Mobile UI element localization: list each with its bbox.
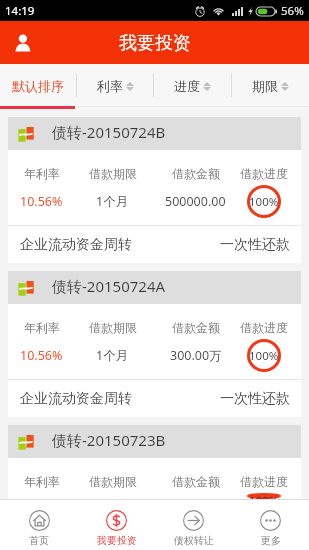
staticText: 借款进度: [240, 320, 288, 335]
staticText: 借款期限: [89, 166, 137, 181]
staticText: 我要投资: [119, 32, 191, 55]
staticText: 企业流动资金周转: [20, 236, 132, 254]
staticText: 一次性还款: [220, 390, 290, 408]
button[interactable]: 期限: [232, 64, 309, 107]
staticText: 债转-20150723B: [52, 430, 166, 450]
staticText: 债转-20150724A: [52, 276, 166, 296]
staticText: 1个月: [96, 347, 129, 364]
staticText: 借款金额: [172, 166, 220, 181]
staticText: 债权转让: [174, 534, 214, 547]
button[interactable]: 债权转让: [155, 500, 232, 550]
button[interactable]: 更多: [232, 500, 309, 550]
staticText: 企业流动资金周转: [20, 390, 132, 408]
staticText: 10.56%: [20, 347, 63, 364]
staticText: 借款金额: [172, 474, 220, 489]
button[interactable]: 默认排序: [0, 64, 76, 107]
staticText: 500000.00: [165, 193, 226, 210]
staticText: 100%: [249, 348, 279, 364]
staticText: 年利率: [24, 166, 60, 181]
staticText: 默认排序: [12, 78, 64, 94]
staticText: 100%: [249, 194, 279, 210]
staticText: 借款期限: [89, 320, 137, 335]
button[interactable]: 利率: [77, 64, 153, 107]
staticText: 更多: [261, 534, 281, 547]
button[interactable]: 进度: [154, 64, 231, 107]
staticText: 我要投资: [97, 534, 137, 547]
staticText: 借款期限: [89, 474, 137, 489]
staticText: 债转-20150724B: [52, 122, 166, 142]
staticText: 首页: [29, 534, 49, 547]
staticText: 1个月: [96, 193, 129, 210]
button[interactable]: 我要投资: [78, 500, 155, 550]
staticText: 借款进度: [240, 474, 288, 489]
staticText: 14:19: [5, 3, 35, 19]
staticText: 100%: [249, 493, 279, 499]
staticText: 56%: [281, 3, 304, 19]
staticText: 利率: [97, 78, 123, 94]
button[interactable]: 债转-20150724A: [8, 271, 301, 417]
staticText: 进度: [174, 78, 200, 94]
button[interactable]: 债转-20150724B: [8, 117, 301, 263]
staticText: 期限: [252, 78, 278, 94]
button[interactable]: Account: [12, 30, 33, 56]
button[interactable]: 债转-20150723B: [8, 425, 301, 499]
staticText: 借款金额: [172, 320, 220, 335]
staticText: 300.00万: [170, 347, 222, 364]
staticText: 年利率: [24, 320, 60, 335]
staticText: 10.56%: [20, 193, 63, 210]
staticText: 年利率: [24, 474, 60, 489]
button[interactable]: 首页: [0, 500, 78, 550]
staticText: 借款进度: [240, 166, 288, 181]
staticText: 一次性还款: [220, 236, 290, 254]
